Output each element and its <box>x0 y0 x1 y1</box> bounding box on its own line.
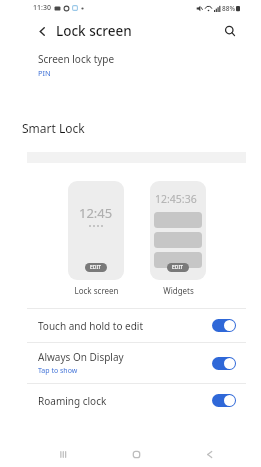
staticText: Screen lock type <box>38 52 115 66</box>
staticText: 88% <box>222 4 235 13</box>
button[interactable]: Back <box>32 21 52 41</box>
button[interactable]: 12:45:36 <box>150 181 206 296</box>
staticText: Lock screen <box>74 285 119 296</box>
button[interactable]: Back <box>173 441 246 467</box>
button[interactable]: Toggle <box>212 319 236 332</box>
button[interactable]: Toggle <box>212 394 236 407</box>
button[interactable]: Screen lock type <box>27 46 246 86</box>
button[interactable]: Toggle <box>212 357 236 370</box>
staticText: Roaming clock <box>38 394 107 408</box>
staticText: 12:45 <box>79 204 113 222</box>
staticText: Always On Display <box>38 350 124 364</box>
button[interactable]: EDIT <box>167 263 189 272</box>
button[interactable]: Search <box>220 21 240 41</box>
button[interactable]: Always On Display <box>27 343 246 383</box>
staticText: Widgets <box>163 285 194 296</box>
staticText: PIN <box>38 68 51 78</box>
button[interactable]: EDIT <box>85 263 107 272</box>
staticText: EDIT <box>172 264 184 271</box>
staticText: 11:30 <box>33 3 51 13</box>
button[interactable]: Recent apps <box>27 441 100 467</box>
staticText: Touch and hold to edit <box>38 319 144 333</box>
button[interactable]: Touch and hold to edit <box>27 309 246 342</box>
staticText: Tap to show <box>38 366 78 376</box>
staticText: 12:45:36 <box>155 192 197 206</box>
button[interactable]: Home <box>100 441 173 467</box>
staticText: Secure lock settings <box>38 129 127 142</box>
button[interactable]: Roaming clock <box>27 384 246 417</box>
button[interactable]: 12:45 <box>68 181 124 296</box>
button[interactable]: Smart Lock <box>3 110 249 146</box>
staticText: Smart Lock <box>22 120 85 136</box>
staticText: EDIT <box>90 264 102 271</box>
button[interactable]: Secure lock settings <box>27 122 246 148</box>
staticText: Lock screen <box>56 22 132 40</box>
